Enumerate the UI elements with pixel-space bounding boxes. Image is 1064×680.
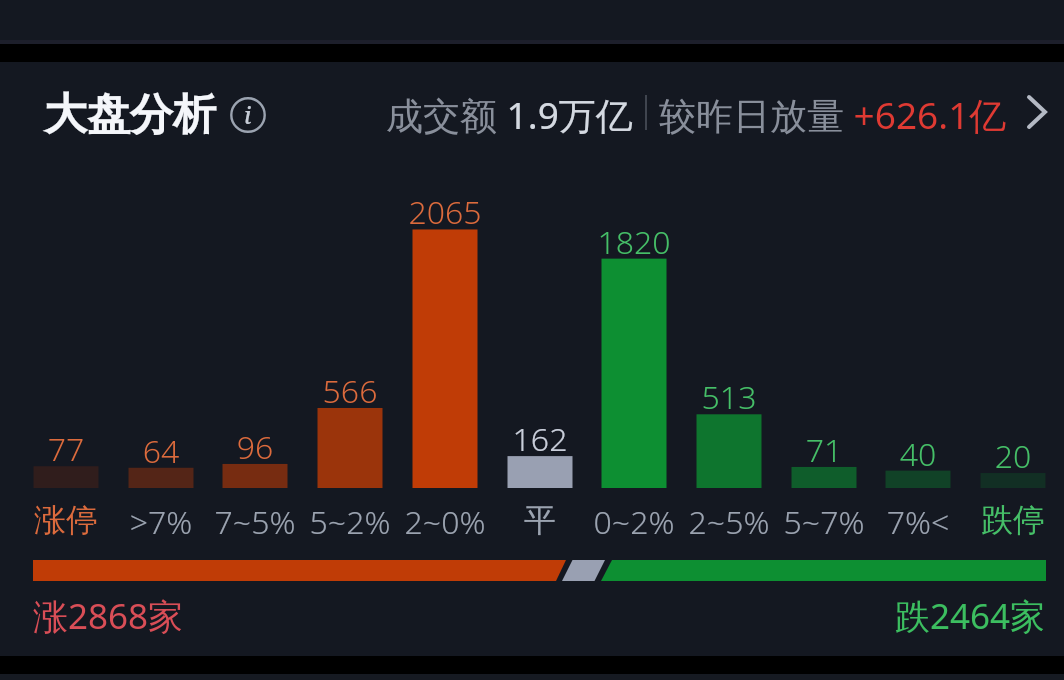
button[interactable]: 涨2868家 [0, 552, 1064, 644]
button[interactable]: 2065 [398, 180, 492, 540]
staticText: 96 [208, 425, 302, 469]
staticText: 566 [303, 369, 397, 413]
staticText: 7%< [871, 500, 965, 544]
button[interactable]: 96 [208, 180, 302, 540]
staticText: 跌停 [966, 500, 1060, 540]
other: More details [1027, 95, 1047, 129]
staticText: 1820 [587, 220, 681, 264]
staticText: 5~2% [303, 500, 397, 544]
staticText: i [244, 99, 252, 130]
staticText: 2065 [398, 190, 492, 234]
button[interactable]: 大盘分析 [44, 88, 266, 142]
staticText: >7% [114, 500, 208, 544]
staticText: 20 [966, 434, 1060, 478]
button[interactable]: 20 [966, 180, 1060, 540]
button[interactable]: 513 [682, 180, 776, 540]
staticText: 162 [493, 417, 587, 461]
other: Info [230, 97, 266, 133]
staticText: 7~5% [208, 500, 302, 544]
staticText: 较昨日放量 +626.1亿 [659, 89, 1007, 135]
staticText: 40 [871, 432, 965, 476]
staticText: 5~7% [777, 500, 871, 544]
staticText: 涨停 [19, 500, 113, 540]
staticText: 成交额 1.9万亿 [386, 89, 633, 135]
staticText: 2~5% [682, 500, 776, 544]
staticText: 平 [493, 500, 587, 540]
button[interactable]: 71 [777, 180, 871, 540]
button[interactable]: 1820 [587, 180, 681, 540]
staticText: 0~2% [587, 500, 681, 544]
staticText: 71 [777, 428, 871, 472]
button[interactable]: 162 [493, 180, 587, 540]
button[interactable]: 成交额 1.9万亿 [386, 89, 1047, 135]
staticText: 跌2464家 [895, 592, 1046, 640]
button[interactable]: 64 [114, 180, 208, 540]
button[interactable]: 566 [303, 180, 397, 540]
staticText: 大盘分析 [44, 88, 216, 142]
button[interactable]: 40 [871, 180, 965, 540]
staticText: 64 [114, 429, 208, 473]
staticText: 513 [682, 375, 776, 419]
staticText: 77 [19, 427, 113, 471]
button[interactable]: 77 [19, 180, 113, 540]
staticText: 2~0% [398, 500, 492, 544]
staticText: 涨2868家 [33, 592, 184, 640]
